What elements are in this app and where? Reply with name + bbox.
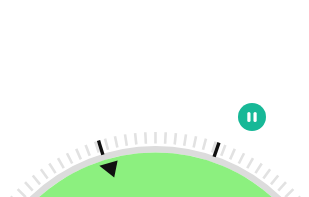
- button[interactable]: Pause: [238, 103, 266, 131]
